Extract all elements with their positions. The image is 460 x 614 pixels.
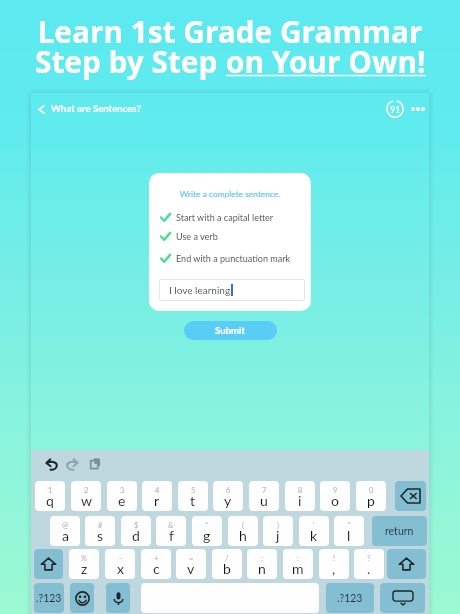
button[interactable]: Voice input xyxy=(106,583,130,613)
staticText: u xyxy=(260,492,268,509)
staticText: on Your Own! xyxy=(226,41,426,82)
button[interactable]: ) xyxy=(263,516,293,546)
staticText: p xyxy=(367,492,375,509)
staticText: $ xyxy=(134,521,139,530)
staticText: 8 xyxy=(298,486,303,495)
staticText: End with a punctuation mark xyxy=(176,253,291,264)
button[interactable]: & xyxy=(156,516,186,546)
staticText: m xyxy=(292,560,304,577)
staticText: e xyxy=(118,492,126,509)
staticText: 9 xyxy=(333,486,338,495)
staticText: Start with a capital letter xyxy=(176,212,274,223)
button[interactable]: 8 xyxy=(285,481,315,511)
staticText: 91 xyxy=(390,104,401,115)
staticText: q xyxy=(46,492,54,509)
staticText: j xyxy=(276,527,280,544)
staticText: * xyxy=(205,521,209,530)
staticText: b xyxy=(223,560,231,577)
button[interactable]: 2 xyxy=(71,481,101,511)
button[interactable]: % xyxy=(69,549,99,579)
button[interactable]: 1 xyxy=(35,481,65,511)
button[interactable]: " xyxy=(334,516,364,546)
button[interactable]: # xyxy=(85,516,115,546)
button[interactable]: Backspace xyxy=(395,481,426,511)
button[interactable]: More options xyxy=(408,99,428,119)
staticText: t xyxy=(190,492,196,509)
button[interactable]: ? xyxy=(354,549,384,579)
button[interactable]: Redo xyxy=(62,454,82,474)
button[interactable]: / xyxy=(212,549,242,579)
button[interactable]: Shift xyxy=(387,549,426,579)
staticText: n xyxy=(258,560,266,577)
staticText: c xyxy=(153,560,160,577)
button[interactable]: Submit xyxy=(184,321,277,340)
staticText: @ xyxy=(62,521,69,530)
staticText: . xyxy=(367,560,371,577)
staticText: ) xyxy=(277,521,280,530)
staticText: 3 xyxy=(120,486,125,495)
staticText: f xyxy=(169,527,174,544)
staticText: # xyxy=(98,521,103,530)
button[interactable]: ' xyxy=(299,516,329,546)
staticText: k xyxy=(310,527,318,544)
staticText: 0 xyxy=(369,486,374,495)
staticText: + xyxy=(154,554,159,563)
staticText: Use a verb xyxy=(176,231,218,242)
staticText: i xyxy=(298,492,302,509)
staticText: 6 xyxy=(226,486,231,495)
button[interactable]: Return xyxy=(372,516,427,546)
staticText: % xyxy=(81,554,88,563)
staticText: 1 xyxy=(48,486,53,495)
button[interactable]: 0 xyxy=(356,481,386,511)
staticText: Step by Step xyxy=(35,41,226,82)
button[interactable]: Shift xyxy=(34,549,63,579)
staticText: z xyxy=(81,560,88,577)
button[interactable]: Progress 91 xyxy=(382,96,408,122)
button[interactable]: 3 xyxy=(107,481,137,511)
button[interactable]: What are Sentences? xyxy=(31,99,147,119)
button[interactable]: ; xyxy=(247,549,277,579)
staticText: h xyxy=(239,527,247,544)
staticText: 7 xyxy=(262,486,267,495)
staticText: & xyxy=(168,521,174,530)
button[interactable]: 9 xyxy=(320,481,350,511)
staticText: - xyxy=(119,554,122,563)
staticText: return xyxy=(385,525,414,538)
staticText: ; xyxy=(261,554,263,563)
button[interactable]: Copy xyxy=(85,453,105,473)
button[interactable]: 7 xyxy=(249,481,279,511)
button[interactable]: ! xyxy=(319,549,349,579)
staticText: y xyxy=(224,492,232,509)
button[interactable]: Numbers xyxy=(326,583,374,613)
staticText: .?123 xyxy=(36,592,62,605)
staticText: x xyxy=(117,560,124,577)
button[interactable]: Hide keyboard xyxy=(380,583,425,613)
staticText: , xyxy=(332,560,336,577)
button[interactable]: = xyxy=(176,549,206,579)
button[interactable]: @ xyxy=(50,516,80,546)
button[interactable]: Numbers xyxy=(34,583,64,613)
button[interactable]: $ xyxy=(121,516,151,546)
staticText: 4 xyxy=(155,486,160,495)
button[interactable]: 5 xyxy=(178,481,208,511)
staticText: Write a complete sentence. xyxy=(149,189,311,199)
button[interactable]: ( xyxy=(228,516,258,546)
staticText: g xyxy=(203,527,211,544)
button[interactable]: I love learning xyxy=(159,279,305,301)
staticText: s xyxy=(97,527,104,544)
button[interactable]: + xyxy=(141,549,171,579)
staticText: ( xyxy=(242,521,245,530)
staticText: l xyxy=(347,527,351,544)
button[interactable]: - xyxy=(105,549,135,579)
button[interactable]: : xyxy=(283,549,313,579)
button[interactable]: 6 xyxy=(213,481,243,511)
staticText: Learn 1st Grade Grammar xyxy=(37,11,423,52)
staticText: Submit xyxy=(215,325,246,337)
button[interactable]: Undo xyxy=(41,454,61,474)
button[interactable]: * xyxy=(192,516,222,546)
staticText: .?123 xyxy=(337,592,363,605)
button[interactable]: 4 xyxy=(142,481,172,511)
button[interactable]: Emoji xyxy=(70,583,94,613)
staticText: ' xyxy=(313,521,315,530)
